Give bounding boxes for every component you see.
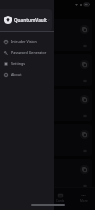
staticText: alex@mail.com <box>20 64 46 69</box>
button[interactable]: Show password <box>81 201 88 208</box>
button[interactable]: Show password <box>81 42 88 49</box>
button[interactable]: Password Generator <box>0 47 54 58</box>
button[interactable]: Banking <box>3 19 92 51</box>
button[interactable]: Email <box>3 54 92 86</box>
button[interactable]: Router <box>3 194 92 210</box>
button[interactable]: Copy password <box>80 165 89 174</box>
button[interactable]: Show password <box>81 112 88 119</box>
button[interactable]: Social <box>3 124 92 156</box>
staticText: Settings <box>11 61 26 66</box>
staticText: alex@mail.com <box>20 29 46 34</box>
button[interactable]: Copy password <box>80 130 89 139</box>
staticText: About <box>11 72 22 77</box>
button[interactable]: Intruder Vision <box>0 36 54 47</box>
button[interactable]: About <box>0 69 54 80</box>
button[interactable]: Close navigation drawer <box>0 0 95 210</box>
button[interactable]: More <box>72 188 95 210</box>
staticText: Password Generator <box>11 50 47 55</box>
button[interactable]: Show password <box>81 182 88 189</box>
button[interactable]: Open navigation drawer <box>3 10 11 18</box>
button[interactable]: Cloud Drive <box>3 89 92 121</box>
button[interactable]: Copy password <box>80 95 89 104</box>
button[interactable]: Work VPN <box>3 159 92 191</box>
button[interactable]: Copy password <box>80 200 89 209</box>
button[interactable]: Copy password <box>80 60 89 69</box>
button[interactable]: Show password <box>81 77 88 84</box>
staticText: v2.1 <box>48 18 50 22</box>
staticText: Cards <box>56 199 65 203</box>
staticText: Email <box>20 58 33 64</box>
button[interactable]: Settings <box>0 58 54 69</box>
button[interactable]: Notes <box>24 188 48 210</box>
staticText: Intruder Vision <box>11 39 37 44</box>
staticText: QuantumVault <box>14 17 47 23</box>
staticText: More <box>80 199 88 203</box>
button[interactable]: Show password <box>81 147 88 154</box>
button[interactable]: Copy password <box>80 25 89 34</box>
button[interactable]: Cards <box>48 188 72 210</box>
